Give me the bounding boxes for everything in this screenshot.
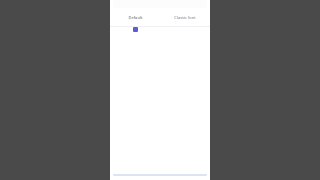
button[interactable]: Default	[110, 8, 160, 26]
staticText: Classic font	[174, 15, 196, 20]
button[interactable]: Classic font	[160, 8, 210, 26]
staticText: Default	[128, 15, 143, 20]
